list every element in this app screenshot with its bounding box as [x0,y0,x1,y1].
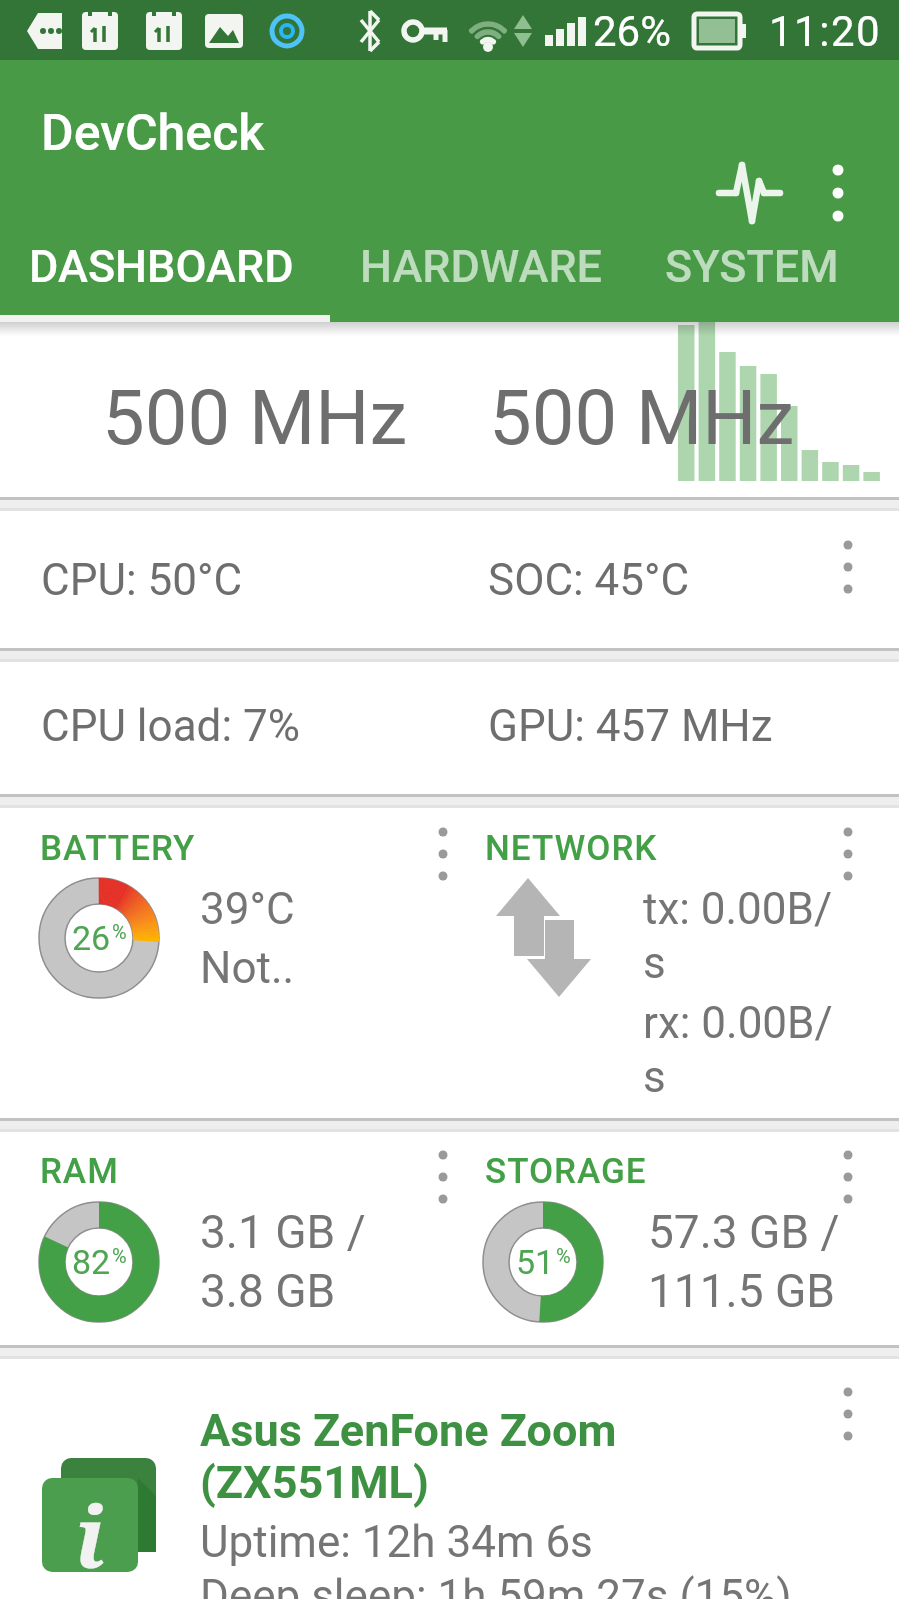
button[interactable] [0,322,899,497]
staticText: i [75,1478,105,1572]
staticText: Deep sleep: 1h 59m 27s (15%) [200,1570,792,1599]
button[interactable] [413,809,473,899]
staticText: s [643,937,666,989]
button[interactable] [705,157,793,229]
button[interactable] [635,225,899,322]
staticText: Not.. [200,942,295,994]
staticText: 26% [593,7,671,56]
staticText: s [643,1051,666,1103]
button[interactable] [30,103,290,163]
button[interactable] [0,808,899,1118]
button[interactable] [413,1132,473,1222]
button[interactable] [0,225,330,322]
button[interactable] [0,1132,899,1345]
staticText: CPU load: 7% [41,700,300,752]
button[interactable] [818,1369,878,1459]
staticText: Asus ZenFone Zoom [200,1404,617,1457]
button[interactable] [330,225,635,322]
staticText: SOC: 45°C [488,554,690,606]
staticText: DASHBOARD [29,240,294,293]
staticText: RAM [40,1151,119,1192]
staticText: STORAGE [485,1151,647,1192]
staticText: 500 MHz [489,373,795,462]
button[interactable] [0,511,899,648]
staticText: 3.8 GB [200,1264,336,1318]
button[interactable] [818,153,860,233]
staticText: SYSTEM [665,240,839,293]
staticText: Uptime: 12h 34m 6s [200,1516,593,1568]
button[interactable] [818,1132,878,1222]
staticText: HARDWARE [360,240,603,293]
button[interactable] [818,522,878,612]
staticText: 57.3 GB / [648,1205,840,1259]
staticText: 11:20 [769,7,882,56]
staticText: 111.5 GB [648,1264,835,1318]
staticText: 26 [72,918,111,958]
staticText: % [112,1244,127,1267]
staticText: % [556,1244,571,1267]
staticText: tx: 0.00B/ [643,883,833,935]
staticText: 3.1 GB / [200,1205,366,1259]
staticText: NETWORK [485,828,658,869]
staticText: (ZX551ML) [200,1456,429,1509]
staticText: 51 [516,1242,555,1282]
staticText: CPU: 50°C [41,554,243,606]
button[interactable] [0,662,899,794]
staticText: rx: 0.00B/ [643,997,833,1049]
staticText: % [112,920,127,943]
staticText: DevCheck [41,104,265,163]
staticText: GPU: 457 MHz [488,700,773,752]
button[interactable] [818,809,878,899]
button[interactable]: i [0,1359,899,1599]
staticText: BATTERY [40,828,196,869]
staticText: 39°C [200,883,295,935]
staticText: 500 MHz [102,373,408,462]
staticText: 82 [72,1242,111,1282]
